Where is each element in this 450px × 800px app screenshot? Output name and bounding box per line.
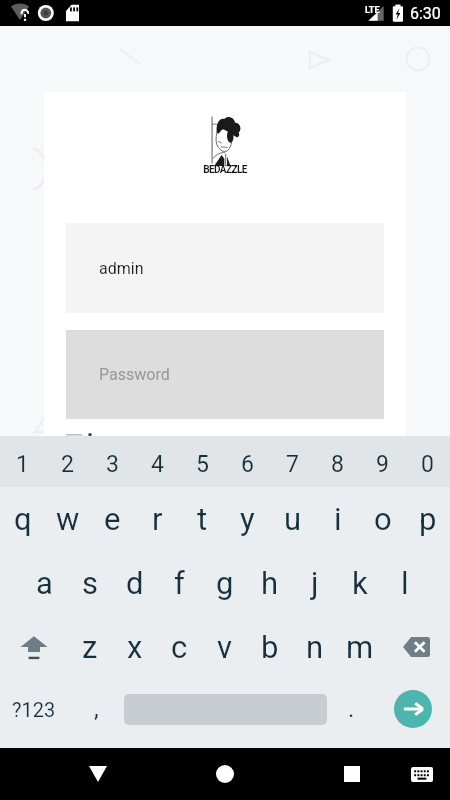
button[interactable]: 1	[0, 436, 45, 487]
button[interactable]: 6	[225, 436, 270, 487]
button[interactable]: t	[180, 487, 225, 551]
button[interactable]: Backspace	[382, 615, 450, 678]
button[interactable]: 7	[270, 436, 315, 487]
staticText: k	[352, 565, 368, 601]
staticText: s	[82, 565, 98, 601]
staticText: a	[36, 565, 53, 601]
staticText: c	[171, 629, 188, 665]
staticText: h	[261, 565, 279, 601]
button[interactable]: h	[247, 551, 292, 615]
button[interactable]: 5	[180, 436, 225, 487]
button[interactable]: q	[0, 487, 45, 551]
button[interactable]: i	[315, 487, 360, 551]
staticText: l	[401, 565, 409, 601]
button[interactable]: 0	[405, 436, 450, 487]
staticText: 6:30	[410, 4, 441, 23]
staticText: 8	[331, 451, 344, 478]
staticText: ,	[94, 695, 99, 723]
button[interactable]: n	[292, 615, 337, 678]
button[interactable]: 9	[360, 436, 405, 487]
button[interactable]: Hide keyboard	[62, 748, 134, 800]
button[interactable]: 8	[315, 436, 360, 487]
button[interactable]: r	[135, 487, 180, 551]
button[interactable]: 3	[90, 436, 135, 487]
button[interactable]: w	[45, 487, 90, 551]
staticText: f	[174, 565, 185, 601]
staticText: o	[374, 501, 392, 537]
button[interactable]: 2	[45, 436, 90, 487]
staticText: y	[240, 501, 255, 537]
staticText: .	[348, 695, 355, 723]
button[interactable]: ?123	[0, 674, 68, 744]
staticText: v	[217, 629, 233, 665]
button[interactable]: Home	[198, 748, 252, 800]
button[interactable]: k	[337, 551, 382, 615]
staticText: d	[126, 565, 144, 601]
button[interactable]: Enter	[394, 690, 432, 728]
staticText: 1	[16, 451, 29, 478]
staticText: u	[284, 501, 302, 537]
staticText: t	[197, 501, 208, 537]
button[interactable]: e	[90, 487, 135, 551]
button[interactable]: Recents	[325, 748, 379, 800]
button[interactable]: b	[247, 615, 292, 678]
button[interactable]: f	[157, 551, 202, 615]
staticText: LTE	[365, 5, 380, 16]
staticText: z	[82, 629, 98, 665]
button[interactable]: ,	[68, 674, 124, 744]
staticText: 6	[241, 451, 254, 478]
staticText: 3	[106, 451, 119, 478]
button[interactable]: a	[22, 551, 67, 615]
button[interactable]: 4	[135, 436, 180, 487]
button[interactable]: Switch keyboard	[399, 748, 445, 800]
staticText: ?123	[12, 698, 56, 721]
button[interactable]: z	[67, 615, 112, 678]
staticText: q	[14, 501, 32, 537]
staticText: admin	[99, 259, 144, 278]
staticText: j	[311, 565, 319, 601]
button[interactable]: x	[112, 615, 157, 678]
button[interactable]	[66, 434, 112, 454]
button[interactable]: y	[225, 487, 270, 551]
button[interactable]: c	[157, 615, 202, 678]
button[interactable]: o	[360, 487, 405, 551]
staticText: p	[419, 501, 437, 537]
button[interactable]: admin	[66, 223, 384, 313]
button[interactable]: Shift	[0, 615, 67, 678]
staticText: i	[334, 501, 342, 537]
staticText: 5	[196, 451, 209, 478]
staticText: b	[261, 629, 279, 665]
button[interactable]: u	[270, 487, 315, 551]
staticText: 0	[421, 451, 434, 478]
button[interactable]: .	[327, 674, 375, 744]
button[interactable]: m	[337, 615, 382, 678]
staticText: 2	[61, 451, 74, 478]
button[interactable]: g	[202, 551, 247, 615]
staticText: m	[346, 629, 374, 665]
button[interactable]: v	[202, 615, 247, 678]
staticText: 7	[286, 451, 299, 478]
staticText: r	[152, 501, 163, 537]
button[interactable]: Space	[124, 674, 327, 744]
button[interactable]: Password	[66, 330, 384, 419]
button[interactable]: p	[405, 487, 450, 551]
staticText: n	[306, 629, 324, 665]
button[interactable]: j	[292, 551, 337, 615]
staticText: Password	[99, 365, 170, 384]
staticText: g	[216, 565, 234, 601]
staticText: x	[127, 629, 143, 665]
button[interactable]: l	[382, 551, 427, 615]
staticText: e	[104, 501, 121, 537]
staticText: BEDAZZLE	[203, 164, 247, 176]
button[interactable]: s	[67, 551, 112, 615]
button[interactable]: d	[112, 551, 157, 615]
staticText: w	[56, 501, 80, 537]
staticText: 9	[376, 451, 389, 478]
staticText: 4	[151, 451, 164, 478]
